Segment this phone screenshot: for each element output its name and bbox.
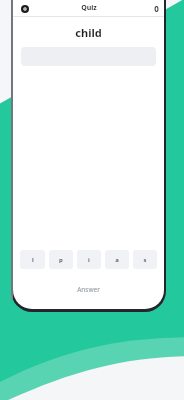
button[interactable]: Answer <box>13 285 164 294</box>
button[interactable]: p <box>49 250 73 269</box>
staticText: a <box>115 256 119 264</box>
staticText: Answer <box>77 285 100 294</box>
staticText: s <box>143 256 147 264</box>
button[interactable]: l <box>20 250 45 269</box>
staticText: p <box>59 256 63 264</box>
staticText: 0 <box>154 3 159 14</box>
staticText: i <box>88 256 90 264</box>
button[interactable]: 0 <box>154 3 159 14</box>
staticText: Quiz <box>81 3 97 13</box>
button[interactable]: s <box>133 250 157 269</box>
button[interactable]: a <box>105 250 129 269</box>
button[interactable]: i <box>77 250 101 269</box>
staticText: l <box>32 256 34 264</box>
staticText: child <box>13 25 164 40</box>
button[interactable]: Settings <box>17 1 32 16</box>
